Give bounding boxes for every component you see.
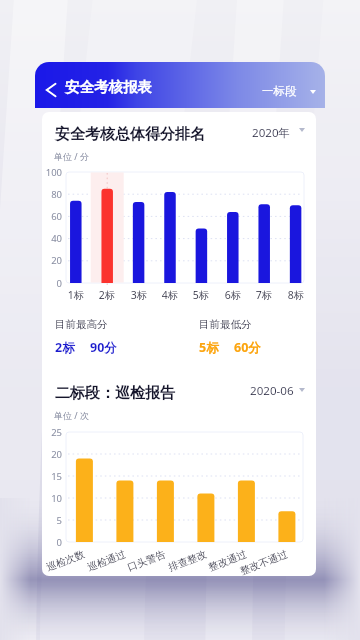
staticText: 60分 — [234, 339, 261, 356]
staticText: 3标 — [124, 288, 154, 302]
staticText: 安全考核报表 — [65, 78, 152, 96]
staticText: 15 — [42, 470, 62, 483]
staticText: 100 — [42, 166, 62, 179]
staticText: 0 — [42, 536, 62, 549]
staticText: 7标 — [249, 288, 279, 302]
staticText: 20 — [42, 448, 62, 461]
staticText: 2020-06 — [250, 383, 294, 399]
staticText: 2020年 — [252, 125, 291, 141]
staticText: 4标 — [155, 288, 185, 302]
staticText: 2标 — [92, 288, 122, 302]
staticText: 巡检次数 — [44, 547, 86, 574]
staticText: 0 — [42, 277, 62, 290]
staticText: 一标段 — [262, 84, 297, 98]
staticText: 整改不通过 — [238, 547, 289, 577]
button[interactable]: Back — [38, 78, 62, 102]
staticText: 二标段：巡检报告 — [55, 384, 175, 403]
staticText: 5标 — [186, 288, 216, 302]
staticText: 口头警告 — [125, 547, 167, 574]
staticText: 单位 / 分 — [54, 150, 90, 162]
button[interactable]: 2020年 — [252, 124, 302, 142]
button[interactable]: 一标段 — [262, 82, 320, 100]
staticText: 巡检通过 — [85, 547, 127, 574]
staticText: 1标 — [61, 288, 91, 302]
staticText: 5标 — [199, 339, 219, 356]
staticText: 6标 — [218, 288, 248, 302]
button[interactable]: 2020-06 — [250, 382, 304, 400]
staticText: 排查整改 — [166, 547, 208, 574]
staticText: 目前最低分 — [199, 318, 252, 331]
staticText: 60 — [42, 210, 62, 223]
staticText: 20 — [42, 254, 62, 267]
staticText: 25 — [42, 426, 62, 439]
staticText: 安全考核总体得分排名 — [55, 125, 205, 144]
staticText: 5 — [42, 514, 62, 527]
staticText: 单位 / 次 — [54, 409, 90, 421]
staticText: 10 — [42, 492, 62, 505]
staticText: 40 — [42, 232, 62, 245]
staticText: 90分 — [90, 339, 117, 356]
staticText: 整改通过 — [206, 547, 248, 574]
staticText: 8标 — [281, 288, 311, 302]
staticText: 2标 — [55, 339, 75, 356]
staticText: 80 — [42, 188, 62, 201]
staticText: 目前最高分 — [55, 318, 108, 331]
